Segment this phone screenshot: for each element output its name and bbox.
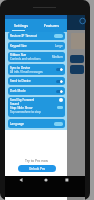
button[interactable]: Language <box>8 119 65 128</box>
staticText: Stop Slide Show <box>10 106 33 110</box>
button[interactable]: Sync to Device <box>8 64 65 75</box>
staticText: Large <box>55 44 63 48</box>
staticText: Sync to Device <box>10 66 31 70</box>
staticText: Sound <box>10 102 20 106</box>
staticText: Ribbon Size <box>10 53 27 57</box>
button[interactable]: Settings <box>5 19 36 32</box>
button[interactable]: Dark Mode <box>8 87 65 95</box>
staticText: Features <box>44 23 59 28</box>
staticText: Unlock Pro <box>29 167 46 171</box>
button[interactable]: Restore IP Timeout <box>8 32 65 40</box>
staticText: Dark Mode <box>10 89 26 93</box>
staticText: Send to Device <box>10 79 31 83</box>
staticText: Scroll by Forward <box>10 98 35 102</box>
button[interactable]: Features <box>36 19 67 32</box>
button[interactable]: Unlock Pro <box>18 165 56 172</box>
other: System navigation <box>5 176 85 197</box>
staticText: Medium <box>52 55 63 59</box>
staticText: Controls and selections <box>10 57 41 61</box>
staticText: Try to Pro now <box>25 158 48 163</box>
button[interactable]: Keypad Size <box>8 42 65 50</box>
staticText: Language <box>10 122 25 126</box>
staticText: All info / Email messages <box>10 70 43 74</box>
button[interactable]: Ribbon Size <box>8 52 65 62</box>
staticText: Settings <box>14 23 28 28</box>
staticText: Keypad Size <box>10 44 27 48</box>
button[interactable]: Scroll by Forward <box>8 97 65 117</box>
staticText: Tap somewhere to stop <box>10 110 41 114</box>
staticText: Restore IP Timeout <box>10 34 37 38</box>
button[interactable]: Send to Device <box>8 77 65 85</box>
